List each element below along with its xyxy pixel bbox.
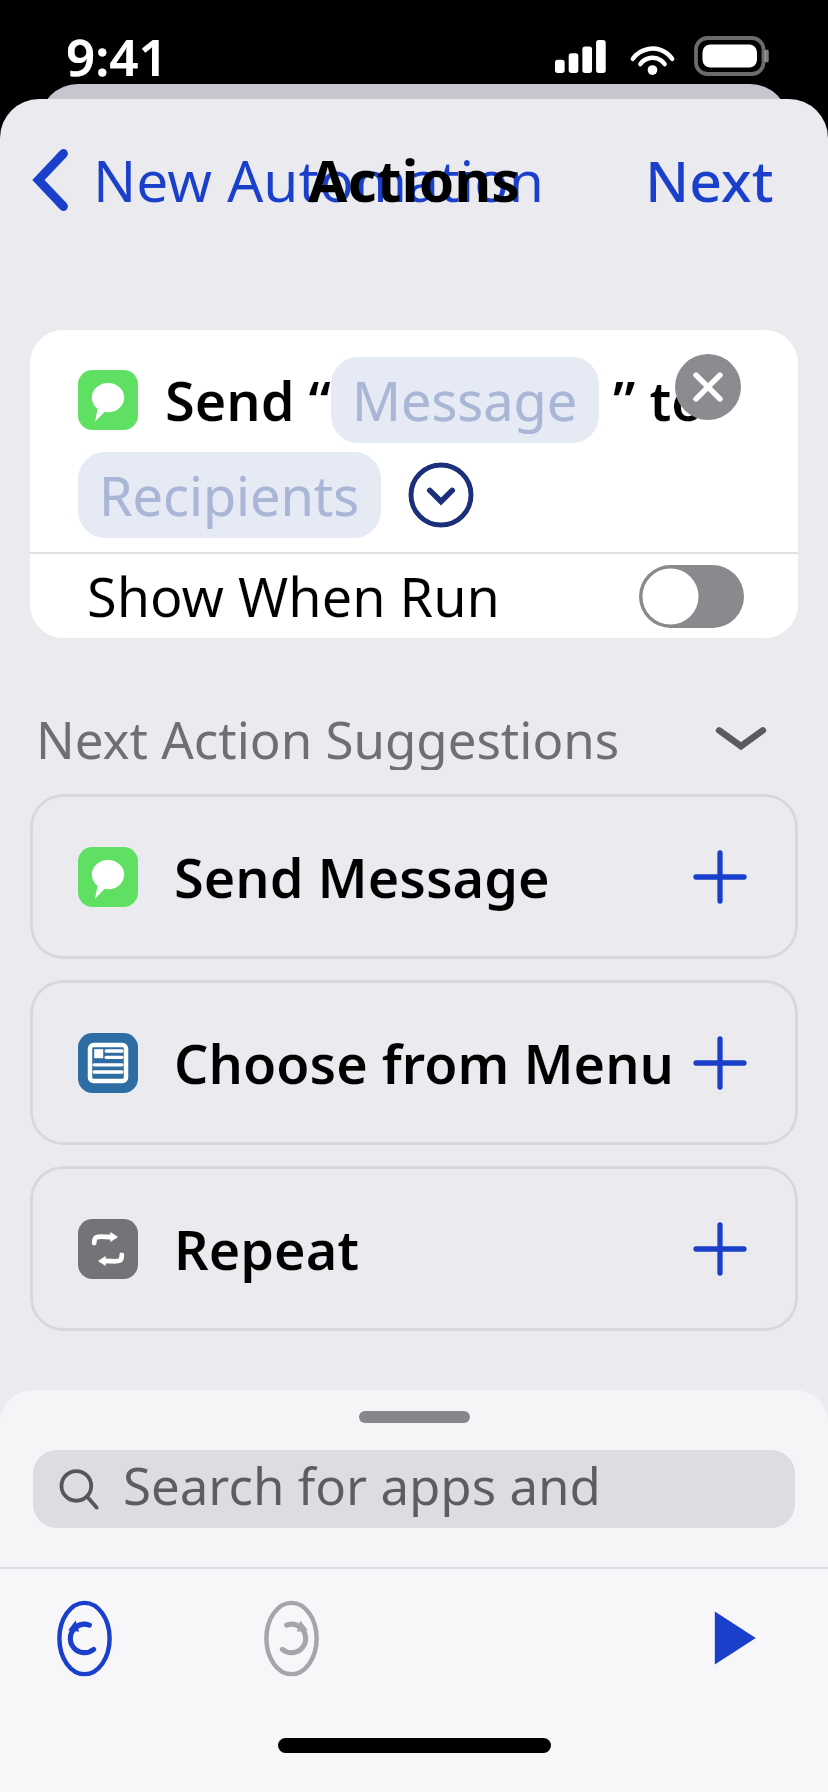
staticText: Next — [645, 141, 774, 219]
staticText: Recipients — [99, 458, 360, 532]
staticText: Next Action Suggestions — [36, 704, 620, 770]
staticText: Show When Run — [87, 559, 500, 633]
button[interactable]: Expand action — [408, 462, 474, 528]
staticText: Send Message — [174, 840, 550, 914]
staticText: Send “ — [165, 363, 331, 437]
staticText: Message — [352, 363, 578, 437]
staticText: Repeat — [174, 1212, 360, 1286]
button[interactable]: Send “ — [30, 330, 798, 552]
button[interactable]: Collapse suggestions — [702, 704, 780, 770]
staticText: Search for apps and actions — [123, 1450, 771, 1528]
staticText: 9:41 — [66, 21, 168, 90]
button[interactable]: Repeat — [30, 1166, 798, 1331]
staticText: Actions — [308, 141, 520, 219]
button[interactable]: Show When Run — [30, 554, 798, 638]
button[interactable]: Remove action — [675, 354, 741, 420]
staticText: New Automation — [93, 141, 544, 219]
button[interactable]: New Automation — [18, 129, 568, 231]
button[interactable]: Search for apps and actions — [33, 1450, 795, 1528]
button[interactable]: Choose from Menu — [30, 980, 798, 1145]
button[interactable]: Undo — [33, 1587, 135, 1689]
staticText: ” to — [599, 363, 705, 437]
button[interactable]: Redo — [240, 1587, 342, 1689]
button[interactable]: Send Message — [30, 794, 798, 959]
staticText: Choose from Menu — [174, 1026, 675, 1100]
button[interactable]: Run shortcut — [678, 1584, 786, 1692]
button[interactable]: Next — [621, 126, 798, 234]
